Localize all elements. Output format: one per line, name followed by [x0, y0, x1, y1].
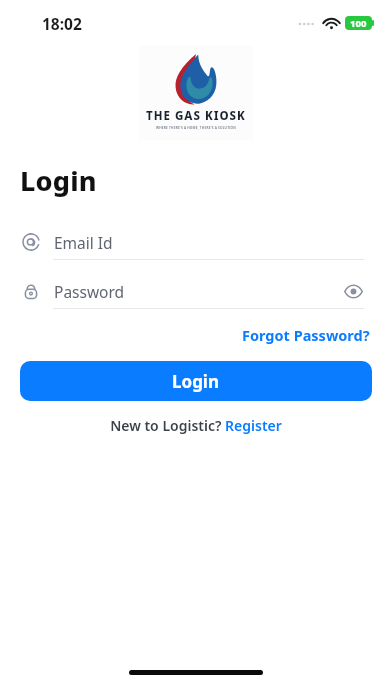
button[interactable]: Password — [0, 274, 392, 309]
staticText: 18:02 — [42, 13, 82, 34]
staticText: 100 — [350, 17, 367, 30]
staticText: Password — [54, 281, 125, 302]
staticText: New to Logistic? Register — [110, 416, 282, 435]
staticText: Login — [20, 162, 97, 199]
button[interactable]: New to Logistic? Register — [102, 413, 290, 438]
button[interactable]: Show password — [342, 280, 364, 302]
staticText: Forgot Password? — [242, 325, 370, 345]
staticText: Login — [172, 370, 220, 393]
staticText: THE GAS KIOSK — [146, 108, 246, 124]
button[interactable]: Email Id — [0, 225, 392, 260]
staticText: WHERE THERE'S A HOME, THERE'S A SOLUTION — [156, 126, 236, 130]
button[interactable]: Login — [20, 361, 372, 401]
button[interactable]: Forgot Password? — [220, 321, 392, 349]
staticText: Email Id — [54, 232, 113, 253]
